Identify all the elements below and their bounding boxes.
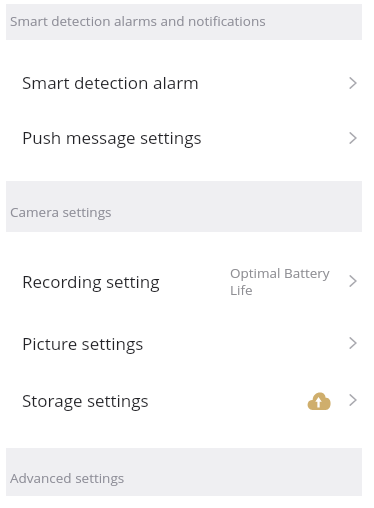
button[interactable]: Recording setting: [0, 251, 374, 311]
staticText: Smart detection alarm: [22, 71, 199, 94]
button[interactable]: Smart detection alarm: [0, 55, 374, 110]
staticText: Camera settings: [10, 203, 112, 221]
staticText: Optimal Battery Life: [230, 264, 332, 299]
staticText: Recording setting: [22, 270, 160, 293]
staticText: Storage settings: [22, 389, 149, 412]
button[interactable]: Picture settings: [0, 313, 374, 373]
button[interactable]: Push message settings: [0, 110, 374, 165]
staticText: Push message settings: [22, 126, 202, 149]
button[interactable]: Storage settings: [0, 371, 374, 429]
other: Cloud storage enabled: [307, 391, 331, 410]
staticText: Picture settings: [22, 332, 144, 355]
staticText: Advanced settings: [10, 469, 125, 487]
staticText: Smart detection alarms and notifications: [10, 12, 266, 30]
